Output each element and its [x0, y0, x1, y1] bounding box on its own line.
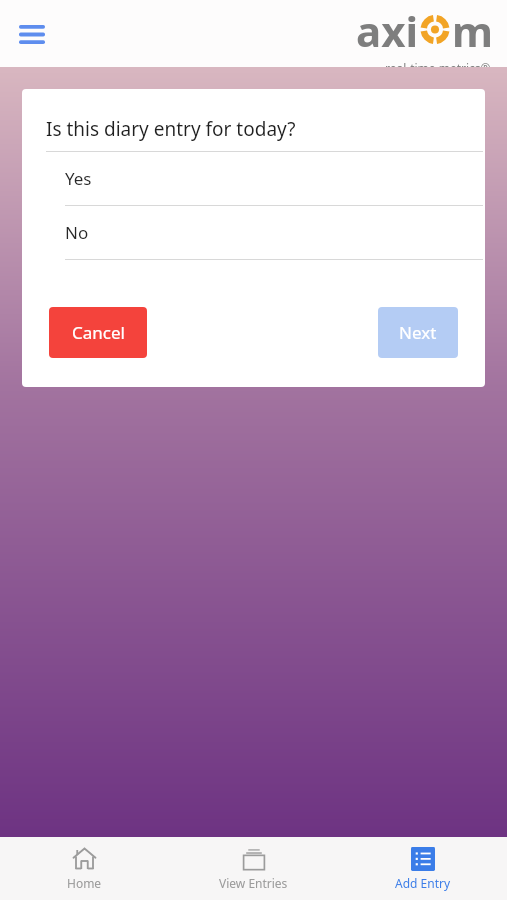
staticText: Is this diary entry for today? [46, 116, 296, 142]
staticText: Home [67, 875, 102, 891]
button[interactable]: Open navigation menu [10, 12, 54, 56]
staticText: real-time metrics® [385, 60, 491, 67]
staticText: Yes [65, 167, 92, 190]
button[interactable]: Cancel [49, 307, 147, 358]
staticText: View Entries [219, 875, 288, 891]
button[interactable]: Home [0, 837, 169, 900]
staticText: Next [399, 321, 437, 344]
staticText: axi [356, 2, 418, 59]
button[interactable]: Yes [22, 152, 485, 206]
button[interactable]: View Entries [169, 837, 338, 900]
staticText: m [452, 2, 493, 59]
staticText: Cancel [72, 321, 125, 344]
button[interactable]: No [22, 206, 485, 260]
button[interactable]: Next [378, 307, 458, 358]
staticText: Add Entry [395, 875, 451, 891]
staticText: No [65, 221, 89, 244]
button[interactable]: Add Entry [338, 837, 507, 900]
